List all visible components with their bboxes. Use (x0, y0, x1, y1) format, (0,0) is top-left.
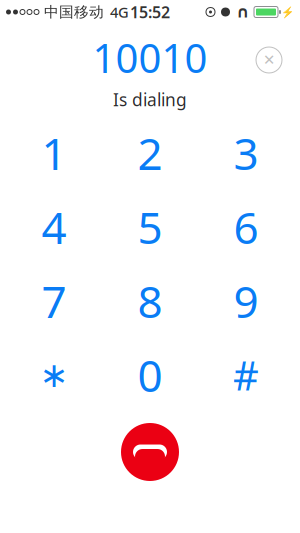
button[interactable]: 0 (104, 338, 196, 412)
button[interactable]: End call (114, 416, 186, 488)
staticText: 6 (233, 198, 258, 256)
button[interactable]: # (200, 338, 292, 412)
staticText: # (233, 348, 259, 401)
staticText: 3 (233, 124, 258, 182)
button[interactable]: 2 (104, 116, 196, 190)
staticText: Is dialing (113, 88, 187, 111)
staticText: 1 (41, 124, 66, 182)
button[interactable]: 7 (8, 264, 100, 338)
button[interactable]: 3 (200, 116, 292, 190)
staticText: 10010 (92, 31, 207, 84)
button[interactable]: 4 (8, 190, 100, 264)
staticText: ∩ (236, 3, 249, 21)
staticText: 0 (137, 346, 162, 404)
button[interactable]: ∗ (8, 338, 100, 412)
staticText: 中国移动 (44, 3, 104, 21)
staticText: 8 (137, 272, 162, 330)
staticText: 5 (137, 198, 162, 256)
button[interactable]: Hide keypad (251, 42, 287, 78)
staticText: 4G (110, 2, 129, 22)
staticText: 9 (233, 272, 258, 330)
staticText: ⚡ (281, 6, 294, 18)
button[interactable]: 5 (104, 190, 196, 264)
staticText: 15:52 (130, 1, 170, 23)
button[interactable]: 6 (200, 190, 292, 264)
button[interactable]: 1 (8, 116, 100, 190)
staticText: 4 (41, 198, 66, 256)
staticText: 2 (137, 124, 162, 182)
staticText: ✕ (263, 52, 275, 68)
button[interactable]: 8 (104, 264, 196, 338)
staticText: 7 (41, 272, 66, 330)
staticText: ∗ (39, 355, 68, 395)
button[interactable]: 9 (200, 264, 292, 338)
